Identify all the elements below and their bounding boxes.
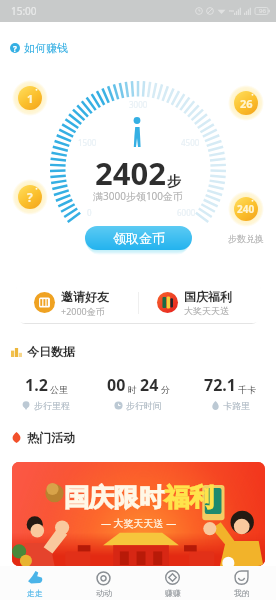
staticText: 0 [87,207,92,218]
staticText: 步数兑换 [228,233,264,244]
staticText: +2000金币 [61,305,105,317]
button[interactable]: 国庆限时 [12,462,265,566]
staticText: 3000 [129,99,148,110]
staticText: 大奖天天送 [184,305,229,316]
staticText: ? [13,43,17,53]
staticText: 分 [161,384,170,395]
button[interactable]: 赚赚 [138,566,207,600]
staticText: ? [27,189,33,205]
staticText: 步行时间 [126,400,162,411]
staticText: 时 [128,384,137,395]
staticText: 1500 [78,137,97,148]
staticText: 热门活动 [27,430,75,445]
staticText: 24 [140,374,159,396]
staticText: 我的 [234,588,250,598]
staticText: 走走 [27,588,43,598]
staticText: ᴴᴰ [229,8,234,15]
button[interactable]: coin 1 [12,80,48,116]
staticText: 福利 [164,482,214,513]
staticText: 国庆限时 [64,482,164,513]
staticText: 邀请好友 [61,289,109,304]
button[interactable]: ? [10,41,68,55]
button[interactable]: 我的 [207,566,276,600]
button[interactable]: 领取金币 [85,226,192,250]
staticText: 72.1 [204,374,236,396]
staticText: 4500 [181,137,200,148]
button[interactable]: coin 26 [228,85,264,121]
staticText: 步行里程 [34,400,70,411]
staticText: 如何赚钱 [24,41,68,55]
staticText: 15:00 [11,4,37,18]
button[interactable]: coin ? [12,179,48,215]
staticText: 千卡 [238,384,256,395]
staticText: 1 [27,91,34,106]
staticText: 领取金币 [113,230,165,246]
staticText: 2402 [95,152,166,194]
button[interactable]: 邀请好友 [16,282,138,323]
staticText: 赚赚 [165,588,181,598]
staticText: 96 [259,7,266,15]
button[interactable]: 动动 [69,566,138,600]
staticText: 国庆福利 [184,289,232,304]
staticText: — 大奖天天送 — [101,516,177,530]
staticText: 步 [167,173,181,191]
staticText: 6000 [177,207,196,218]
staticText: 公里 [50,384,68,395]
button[interactable]: coin 240 [228,191,264,227]
staticText: 240 [237,202,255,216]
staticText: 00 [107,374,126,396]
staticText: 满3000步领100金币 [93,189,184,203]
staticText: 今日数据 [27,344,75,359]
staticText: 26 [240,96,253,111]
button[interactable]: 国庆福利 [139,282,261,323]
button[interactable]: 走走 [0,566,69,600]
staticText: 1.2 [25,374,48,396]
staticText: 动动 [96,588,112,598]
staticText: 卡路里 [223,400,250,411]
